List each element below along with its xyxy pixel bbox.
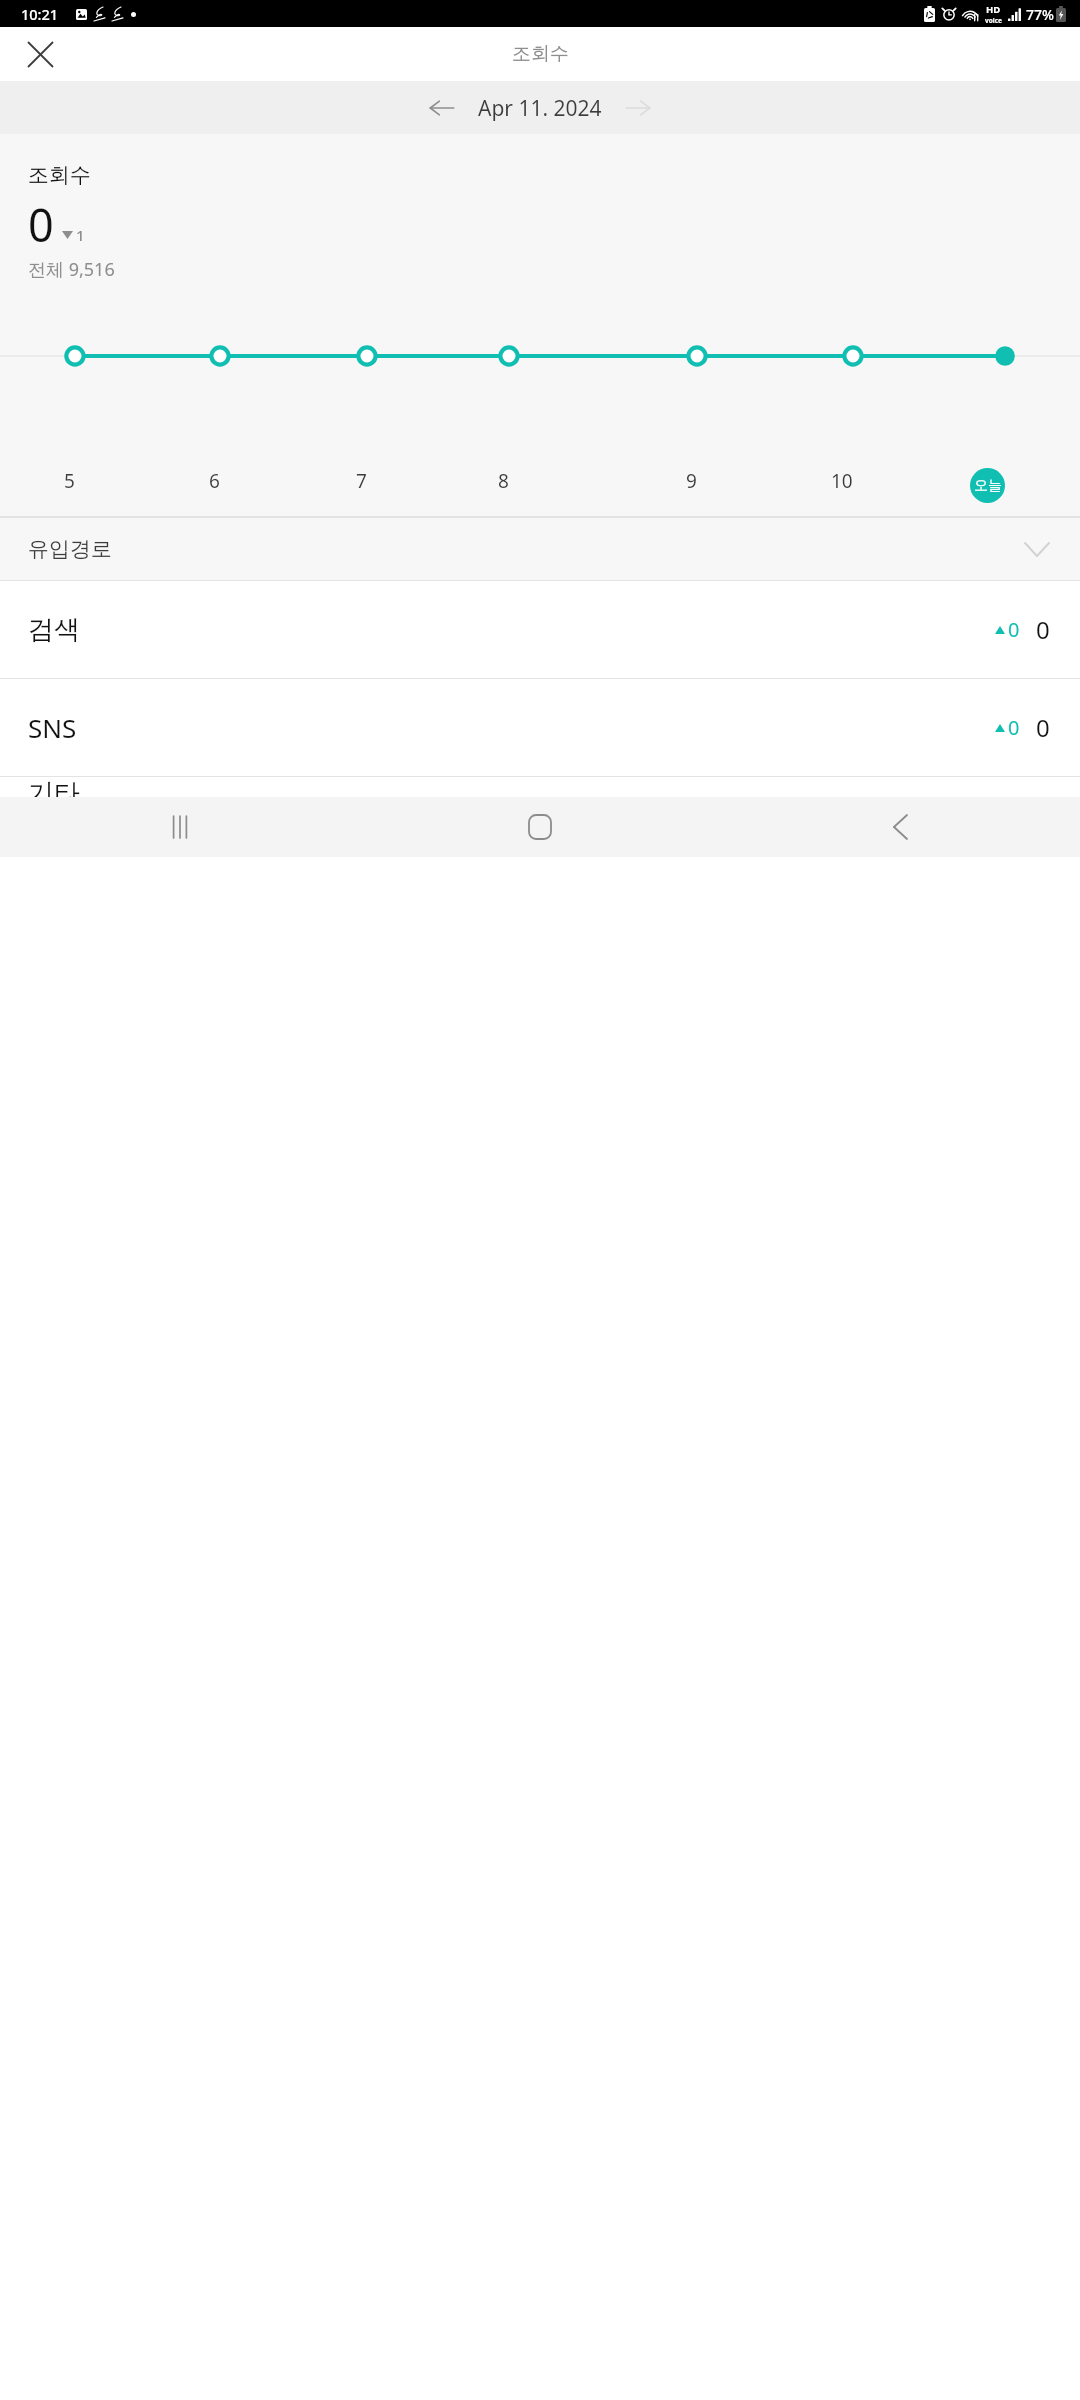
staticText: 조회수 — [512, 42, 569, 66]
staticText: 5 — [64, 468, 75, 494]
staticText: 77% — [1026, 5, 1054, 24]
button[interactable]: 뒤로 — [720, 797, 1080, 857]
staticText: 0 — [1008, 714, 1020, 741]
staticText: 9 — [686, 468, 697, 494]
staticText: 10 — [831, 468, 853, 494]
staticText: 기타 — [28, 777, 80, 797]
button[interactable]: 다음 날짜 — [616, 86, 660, 130]
staticText: 0 — [1008, 616, 1020, 643]
staticText: SNS — [28, 710, 77, 745]
staticText: 0 — [1036, 711, 1050, 744]
staticText: 7 — [356, 468, 367, 494]
button[interactable]: 검색 — [0, 581, 1080, 678]
button[interactable]: 오늘 — [970, 468, 1005, 503]
button[interactable]: 닫기 — [16, 30, 64, 78]
button[interactable]: 기타 — [0, 777, 1080, 797]
staticText: 6 — [209, 468, 220, 494]
staticText: HD — [986, 3, 1001, 16]
staticText: 10:21 — [21, 4, 59, 24]
staticText: 조회수 — [28, 162, 91, 188]
staticText: 8 — [498, 468, 509, 494]
staticText: 0 — [28, 194, 54, 255]
button[interactable]: SNS — [0, 679, 1080, 776]
staticText: 검색 — [28, 613, 80, 646]
button[interactable]: 유입경로 — [0, 518, 1080, 580]
staticText: 유입경로 — [28, 536, 112, 562]
staticText: voice — [985, 16, 1002, 25]
staticText: 1 — [76, 225, 85, 245]
button[interactable]: 최근 앱 — [0, 797, 360, 857]
staticText: 오늘 — [974, 477, 1002, 495]
staticText: 전체 9,516 — [28, 257, 115, 282]
button[interactable]: 이전 날짜 — [420, 86, 464, 130]
button[interactable]: 홈 — [360, 797, 720, 857]
staticText: 0 — [1036, 613, 1050, 646]
button[interactable]: Apr 11. 2024 — [478, 94, 602, 123]
